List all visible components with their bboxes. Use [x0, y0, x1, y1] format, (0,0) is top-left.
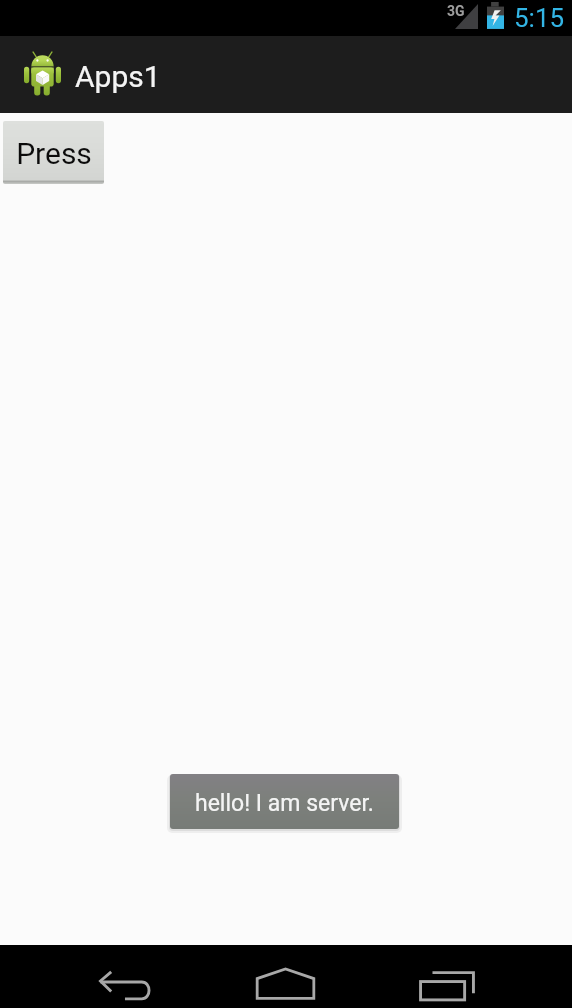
button[interactable]: Home: [233, 945, 338, 1008]
button[interactable]: Back: [72, 945, 177, 1008]
button[interactable]: Press: [3, 121, 104, 184]
staticText: Apps1: [75, 59, 161, 94]
staticText: 5:15: [514, 3, 565, 33]
staticText: 3G: [447, 3, 465, 19]
staticText: Press: [16, 136, 92, 171]
button[interactable]: Recent apps: [396, 945, 501, 1008]
staticText: hello! I am server.: [195, 790, 374, 817]
